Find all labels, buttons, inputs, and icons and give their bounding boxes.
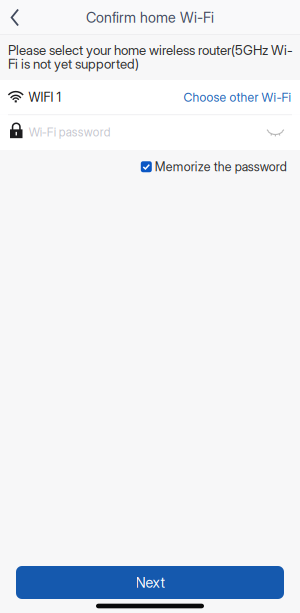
staticText: Choose other Wi-Fi	[184, 90, 292, 105]
staticText: Next	[135, 574, 164, 591]
staticText: Wi-Fi password	[29, 125, 111, 139]
button[interactable]: Next	[16, 566, 284, 599]
staticText: Memorize the password	[155, 159, 287, 174]
staticText: Confirm home Wi-Fi	[86, 9, 214, 26]
button[interactable]: Back	[0, 0, 30, 35]
staticText: Please select your home wireless router(…	[8, 42, 293, 58]
button[interactable]: Memorize the password	[141, 155, 287, 178]
staticText: WIFI 1	[28, 90, 61, 105]
staticText: Fi is not yet supported)	[8, 56, 139, 72]
button[interactable]: Show password	[262, 121, 288, 144]
button[interactable]: WIFI 1	[0, 80, 300, 114]
